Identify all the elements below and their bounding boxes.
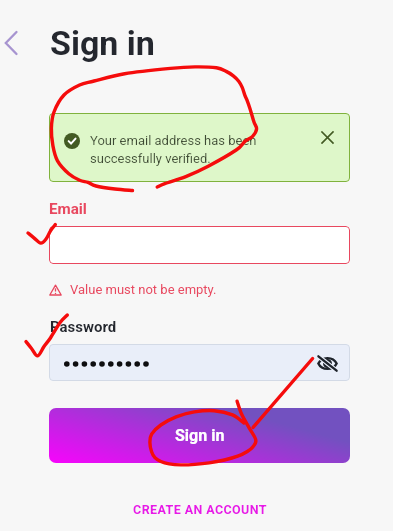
button[interactable]: Show password	[49, 344, 350, 381]
staticText: Value must not be empty.	[70, 282, 217, 297]
button[interactable]	[49, 226, 350, 264]
button[interactable]: Sign in	[49, 408, 350, 463]
button[interactable]: CREATE AN ACCOUNT	[120, 497, 280, 521]
staticText: Email	[49, 200, 87, 218]
staticText: Sign in	[175, 426, 225, 445]
staticText: Sign in	[50, 23, 155, 63]
staticText: Your email address has been successfully…	[90, 133, 257, 166]
button[interactable]: Show password	[314, 350, 340, 376]
staticText: CREATE AN ACCOUNT	[133, 502, 267, 517]
staticText: Password	[50, 318, 117, 336]
button[interactable]: Back	[0, 26, 24, 60]
button[interactable]: Dismiss	[315, 125, 339, 149]
